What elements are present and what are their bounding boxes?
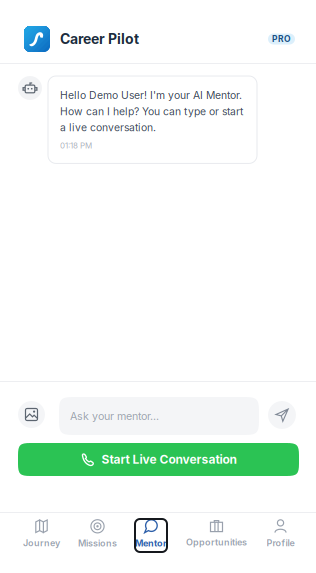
button[interactable]: Start Live Conversation bbox=[18, 443, 299, 476]
staticText: Hello Demo User! I'm your AI Mentor. How… bbox=[60, 89, 243, 134]
staticText: 01:18 PM bbox=[60, 141, 92, 150]
button[interactable]: Journey bbox=[23, 519, 60, 552]
button[interactable]: Profile bbox=[266, 519, 295, 552]
staticText: Opportunities bbox=[186, 537, 247, 548]
staticText: Career Pilot bbox=[60, 30, 139, 47]
staticText: Missions bbox=[78, 538, 117, 549]
staticText: Profile bbox=[266, 537, 294, 548]
staticText: PRO bbox=[272, 34, 291, 44]
button[interactable]: Send message bbox=[268, 401, 296, 431]
staticText: Ask your mentor... bbox=[70, 409, 159, 422]
button[interactable]: Opportunities bbox=[184, 519, 248, 552]
button[interactable]: Mentor bbox=[135, 519, 167, 552]
staticText: Journey bbox=[23, 537, 60, 548]
button[interactable]: PRO bbox=[268, 33, 295, 44]
button[interactable]: Missions bbox=[77, 519, 117, 552]
staticText: Start Live Conversation bbox=[101, 452, 236, 467]
staticText: Mentor bbox=[135, 538, 167, 549]
button[interactable]: Attach image bbox=[18, 401, 45, 431]
